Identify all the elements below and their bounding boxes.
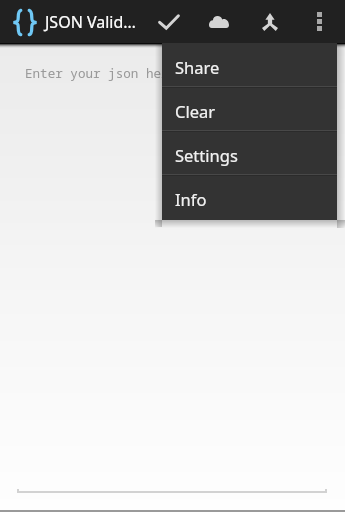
button[interactable]: More options xyxy=(295,0,344,43)
button[interactable]: Validate xyxy=(144,0,193,43)
button[interactable]: Save to cloud xyxy=(194,0,243,43)
button[interactable]: Format xyxy=(245,0,294,43)
button[interactable]: Settings xyxy=(162,131,337,175)
staticText: Share xyxy=(175,56,220,78)
button[interactable]: Share xyxy=(162,43,337,87)
staticText: Enter your json here xyxy=(25,65,177,82)
staticText: Settings xyxy=(175,144,238,166)
button[interactable]: Info xyxy=(162,175,337,219)
staticText: JSON Valid… xyxy=(45,11,136,33)
staticText: Clear xyxy=(175,100,216,122)
staticText: Info xyxy=(175,188,207,210)
button[interactable]: Clear xyxy=(162,87,337,131)
